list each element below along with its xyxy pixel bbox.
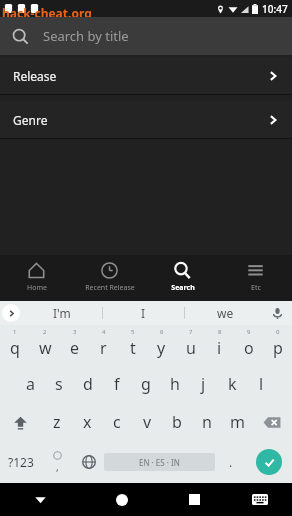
button[interactable]: 7 xyxy=(176,327,205,365)
button[interactable]: l xyxy=(247,365,276,403)
staticText: 8 xyxy=(218,328,222,336)
button[interactable]: Voice input xyxy=(267,303,287,323)
button[interactable]: s xyxy=(44,365,73,403)
staticText: b xyxy=(172,411,182,433)
button[interactable]: 8 xyxy=(205,327,234,365)
button[interactable]: 9 xyxy=(234,327,263,365)
staticText: u xyxy=(186,337,196,359)
button[interactable]: 0 xyxy=(263,327,292,365)
staticText: o xyxy=(244,337,254,359)
staticText: I'm xyxy=(53,305,71,321)
staticText: Search by title xyxy=(43,27,129,45)
button[interactable]: b xyxy=(162,403,192,441)
button[interactable]: h xyxy=(160,365,189,403)
button[interactable]: f xyxy=(102,365,131,403)
staticText: q xyxy=(10,337,20,359)
staticText: 7 xyxy=(189,328,193,336)
button[interactable]: Change language xyxy=(73,441,104,483)
staticText: EN · ES · IN xyxy=(139,457,180,468)
staticText: k xyxy=(228,373,237,395)
button[interactable]: Home xyxy=(0,255,73,301)
button[interactable]: 1 xyxy=(0,327,30,365)
staticText: Etc xyxy=(251,283,261,293)
button[interactable]: 5 xyxy=(118,327,147,365)
staticText: hack-cheat.org xyxy=(2,5,92,17)
button[interactable]: . xyxy=(215,441,246,483)
button[interactable]: m xyxy=(222,403,252,441)
staticText: 9 xyxy=(247,328,251,336)
staticText: 4 xyxy=(102,328,106,336)
button[interactable]: a xyxy=(16,365,44,403)
button[interactable]: n xyxy=(192,403,222,441)
staticText: g xyxy=(141,373,151,395)
button[interactable]: Release xyxy=(0,57,292,94)
button[interactable]: EN · ES · IN xyxy=(104,453,215,471)
staticText: d xyxy=(83,373,93,395)
staticText: f xyxy=(114,373,120,395)
staticText: e xyxy=(70,337,80,359)
staticText: I xyxy=(141,305,146,321)
button[interactable]: Search by title xyxy=(0,17,292,55)
button[interactable]: Etc xyxy=(219,255,292,301)
button[interactable]: Back xyxy=(0,483,81,516)
button[interactable]: Done xyxy=(256,449,282,475)
staticText: . xyxy=(229,454,233,470)
button[interactable]: Backspace xyxy=(252,403,292,441)
button[interactable]: d xyxy=(73,365,102,403)
staticText: t xyxy=(130,337,136,359)
staticText: y xyxy=(157,337,166,359)
staticText: 0 xyxy=(276,328,280,336)
button[interactable]: Recent Release xyxy=(73,255,146,301)
staticText: Search xyxy=(171,283,195,293)
staticText: Home xyxy=(27,283,47,293)
button[interactable]: j xyxy=(189,365,218,403)
staticText: w xyxy=(39,337,52,359)
staticText: Release xyxy=(13,68,57,84)
button[interactable]: 3 xyxy=(60,327,89,365)
staticText: Recent Release xyxy=(85,283,135,293)
staticText: , xyxy=(56,460,59,474)
button[interactable]: 6 xyxy=(147,327,176,365)
button[interactable]: 4 xyxy=(89,327,118,365)
button[interactable]: c xyxy=(102,403,132,441)
staticText: n xyxy=(202,411,212,433)
button[interactable]: Home xyxy=(81,483,162,516)
staticText: h xyxy=(170,373,180,395)
button[interactable]: Switch keyboard xyxy=(227,483,292,516)
staticText: we xyxy=(217,305,234,321)
button[interactable]: g xyxy=(131,365,160,403)
staticText: 5 xyxy=(131,328,135,336)
staticText: s xyxy=(55,373,63,395)
staticText: l xyxy=(259,373,264,395)
button[interactable]: Shift xyxy=(0,403,41,441)
button[interactable]: v xyxy=(132,403,162,441)
staticText: p xyxy=(273,337,283,359)
staticText: 2 xyxy=(43,328,47,336)
staticText: i xyxy=(217,337,222,359)
staticText: j xyxy=(201,373,206,395)
button[interactable]: Search xyxy=(146,255,219,301)
button[interactable]: I'm xyxy=(22,301,102,325)
staticText: 1 xyxy=(13,328,17,336)
staticText: m xyxy=(230,411,245,433)
button[interactable]: Recent apps xyxy=(162,483,227,516)
staticText: 3 xyxy=(73,328,77,336)
button[interactable]: 2 xyxy=(30,327,60,365)
button[interactable]: I xyxy=(103,301,184,325)
button[interactable]: Expand suggestions xyxy=(2,304,20,322)
button[interactable]: ?123 xyxy=(0,441,42,483)
button[interactable]: k xyxy=(218,365,247,403)
button[interactable]: x xyxy=(72,403,102,441)
staticText: 6 xyxy=(160,328,164,336)
staticText: 10:47 xyxy=(262,2,288,16)
staticText: z xyxy=(53,411,61,433)
button[interactable]: we xyxy=(185,301,266,325)
staticText: r xyxy=(100,337,107,359)
staticText: x xyxy=(83,411,92,433)
button[interactable]: z xyxy=(41,403,72,441)
staticText: v xyxy=(143,411,152,433)
staticText: a xyxy=(26,373,35,395)
button[interactable]: Genre xyxy=(0,101,292,138)
button[interactable]: Emoji xyxy=(42,441,73,483)
staticText: c xyxy=(113,411,121,433)
